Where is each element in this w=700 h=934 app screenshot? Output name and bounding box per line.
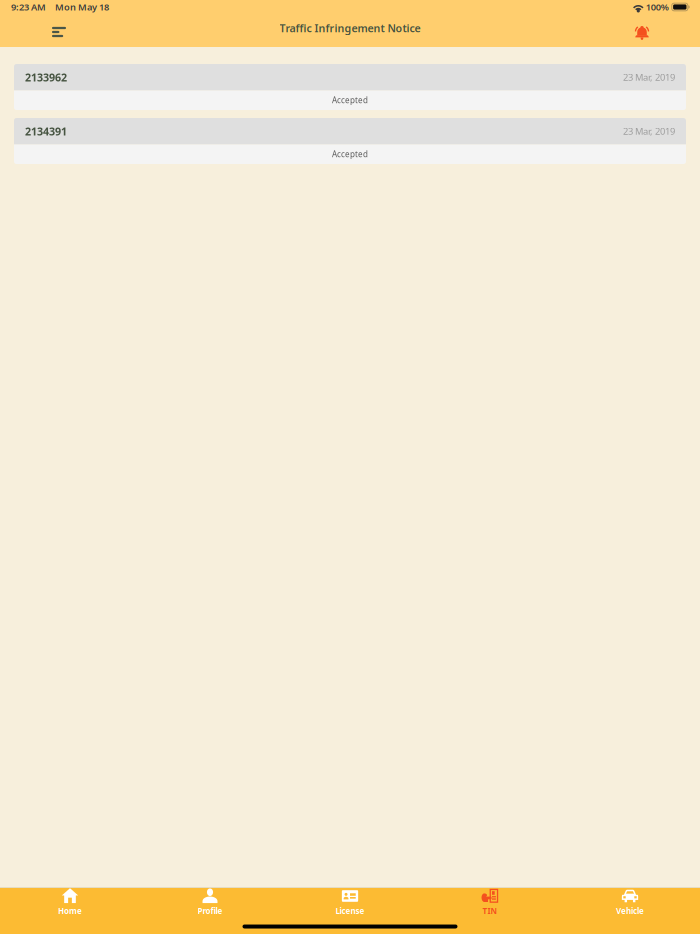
staticText: 9:23 AM — [11, 1, 46, 13]
button[interactable]: TIN — [420, 888, 560, 934]
button[interactable]: 2134391 — [14, 118, 686, 164]
staticText: Mon May 18 — [55, 1, 109, 13]
button[interactable]: Vehicle — [560, 888, 700, 934]
button[interactable]: 2133962 — [14, 64, 686, 110]
staticText: Home — [58, 905, 82, 916]
button[interactable]: Profile — [140, 888, 280, 934]
staticText: Accepted — [332, 95, 368, 105]
staticText: Traffic Infringement Notice — [279, 21, 420, 35]
staticText: 23 Mar, 2019 — [623, 125, 675, 137]
button[interactable]: Home — [0, 888, 140, 934]
button[interactable]: Menu — [40, 11, 82, 45]
staticText: Vehicle — [616, 905, 644, 916]
staticText: License — [335, 905, 364, 916]
staticText: 2133962 — [25, 70, 67, 84]
button[interactable]: License — [280, 888, 420, 934]
staticText: 2134391 — [25, 124, 67, 138]
button[interactable]: Notifications — [622, 12, 662, 44]
staticText: 23 Mar, 2019 — [623, 71, 675, 83]
staticText: TIN — [482, 905, 497, 916]
staticText: Accepted — [332, 149, 368, 159]
staticText: Profile — [197, 905, 222, 916]
staticText: 100% — [646, 1, 669, 13]
